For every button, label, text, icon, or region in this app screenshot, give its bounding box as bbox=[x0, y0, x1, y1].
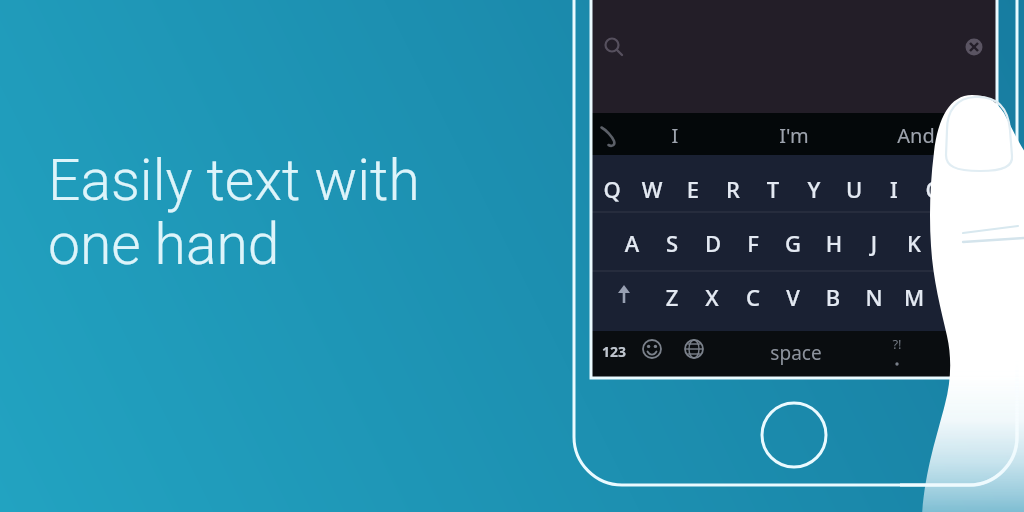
button[interactable]: K bbox=[899, 228, 929, 258]
button[interactable]: 123 bbox=[602, 342, 627, 361]
staticText: I bbox=[635, 122, 715, 149]
button[interactable]: U bbox=[839, 174, 869, 204]
staticText: 123 bbox=[602, 342, 627, 361]
button[interactable]: E bbox=[678, 174, 708, 204]
button[interactable]: F bbox=[738, 228, 768, 258]
button[interactable]: W bbox=[637, 174, 667, 204]
button[interactable]: Y bbox=[799, 174, 829, 204]
staticText: T bbox=[758, 174, 788, 204]
button[interactable]: N bbox=[859, 282, 889, 312]
button[interactable]: I'm bbox=[754, 122, 834, 149]
staticText: V bbox=[778, 282, 808, 312]
staticText: N bbox=[859, 282, 889, 312]
staticText: I bbox=[879, 174, 909, 204]
staticText: U bbox=[839, 174, 869, 204]
staticText: Y bbox=[799, 174, 829, 204]
staticText: G bbox=[778, 228, 808, 258]
button[interactable]: And bbox=[876, 122, 956, 149]
staticText: L bbox=[939, 228, 969, 258]
staticText: B bbox=[818, 282, 848, 312]
staticText: space bbox=[766, 340, 826, 366]
button[interactable]: R bbox=[718, 174, 748, 204]
staticText: C bbox=[738, 282, 768, 312]
staticText: And bbox=[876, 122, 956, 149]
staticText: X bbox=[697, 282, 727, 312]
button[interactable]: O bbox=[919, 174, 949, 204]
staticText: S bbox=[657, 228, 687, 258]
button[interactable]: I bbox=[635, 122, 715, 149]
staticText: D bbox=[698, 228, 728, 258]
staticText: O bbox=[919, 174, 949, 204]
button[interactable]: H bbox=[819, 228, 849, 258]
staticText: W bbox=[637, 174, 667, 204]
staticText: R bbox=[718, 174, 748, 204]
button[interactable]: Q bbox=[597, 174, 627, 204]
button[interactable]: T bbox=[758, 174, 788, 204]
staticText: F bbox=[738, 228, 768, 258]
button[interactable]: S bbox=[657, 228, 687, 258]
button[interactable]: A bbox=[617, 228, 647, 258]
button[interactable]: J bbox=[859, 228, 889, 258]
staticText: M bbox=[899, 282, 929, 312]
staticText: Z bbox=[657, 282, 687, 312]
button[interactable]: I bbox=[879, 174, 909, 204]
staticText: Easily text with one hand bbox=[48, 147, 420, 278]
button[interactable]: Z bbox=[657, 282, 687, 312]
staticText: J bbox=[859, 228, 889, 258]
button[interactable]: V bbox=[778, 282, 808, 312]
button[interactable]: X bbox=[697, 282, 727, 312]
staticText: ?! bbox=[885, 335, 909, 353]
button[interactable]: space bbox=[766, 340, 826, 366]
button[interactable]: D bbox=[698, 228, 728, 258]
button[interactable]: ?! bbox=[885, 335, 909, 353]
staticText: K bbox=[899, 228, 929, 258]
button[interactable]: Easily text with one hand bbox=[48, 147, 420, 278]
staticText: A bbox=[617, 228, 647, 258]
button[interactable]: M bbox=[899, 282, 929, 312]
button[interactable]: C bbox=[738, 282, 768, 312]
button[interactable]: L bbox=[939, 228, 969, 258]
staticText: I'm bbox=[754, 122, 834, 149]
staticText: Q bbox=[597, 174, 627, 204]
button[interactable]: B bbox=[818, 282, 848, 312]
staticText: H bbox=[819, 228, 849, 258]
staticText: E bbox=[678, 174, 708, 204]
button[interactable]: G bbox=[778, 228, 808, 258]
